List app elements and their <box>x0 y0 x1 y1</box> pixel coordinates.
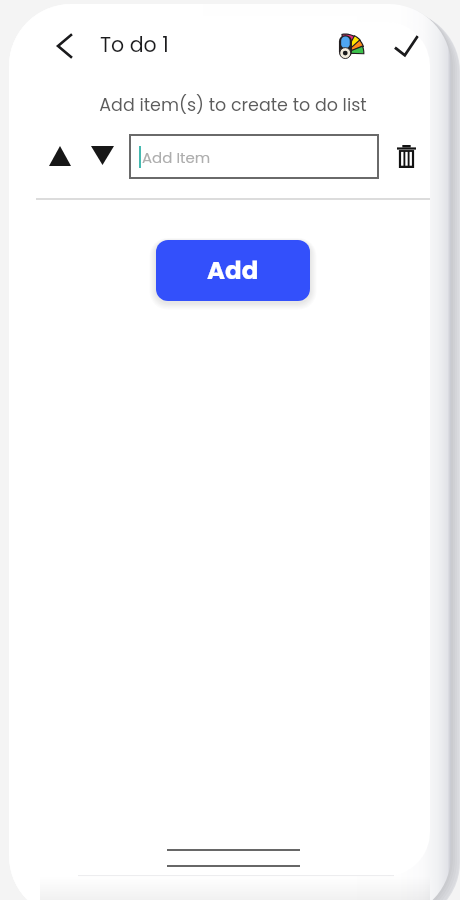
button[interactable]: Delete <box>390 140 422 172</box>
button[interactable]: Move up <box>41 137 79 175</box>
button[interactable]: Move down <box>83 136 121 174</box>
staticText: Add item(s) to create to do list <box>36 93 430 118</box>
staticText: Add Item <box>142 147 211 168</box>
staticText: To do 1 <box>100 30 169 59</box>
button[interactable]: Theme colour <box>329 27 367 65</box>
staticText: Add <box>207 253 259 287</box>
button[interactable]: Add Item <box>129 134 379 179</box>
button[interactable]: Add <box>156 240 310 301</box>
button[interactable]: Save <box>384 24 428 68</box>
button[interactable]: Back <box>42 24 86 68</box>
